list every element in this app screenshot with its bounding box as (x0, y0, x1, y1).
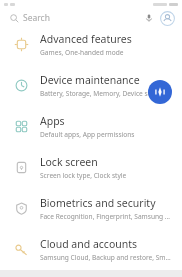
staticText: Games, One-handed mode (40, 48, 124, 57)
button[interactable]: Apps (0, 106, 182, 147)
staticText: Default apps, App permissions (40, 130, 135, 139)
staticText: Face Recognition, Fingerprint, Samsung P… (40, 212, 172, 221)
staticText: Cloud and accounts (40, 237, 138, 251)
button[interactable]: Biometrics and security (0, 188, 182, 229)
button[interactable]: Cloud and accounts (0, 229, 182, 270)
button[interactable]: Lock screen (0, 147, 182, 188)
staticText: Screen lock type, Clock style (40, 171, 127, 180)
button[interactable]: Voice search (141, 10, 157, 26)
button[interactable]: Advanced features (0, 30, 182, 65)
staticText: Battery, Storage, Memory, Device securit… (40, 89, 169, 98)
button[interactable]: Bixby Vision (148, 80, 172, 104)
staticText: Biometrics and security (40, 196, 156, 210)
button[interactable]: Device maintenance (0, 65, 182, 106)
staticText: Device maintenance (40, 73, 140, 87)
staticText: Samsung Cloud, Backup and restore, Smart… (40, 253, 172, 262)
staticText: Apps (40, 114, 65, 128)
staticText: Search (23, 12, 50, 24)
button[interactable]: Account (159, 10, 176, 27)
staticText: Advanced features (40, 32, 132, 46)
button[interactable]: Search (10, 12, 141, 24)
staticText: Lock screen (40, 155, 98, 169)
